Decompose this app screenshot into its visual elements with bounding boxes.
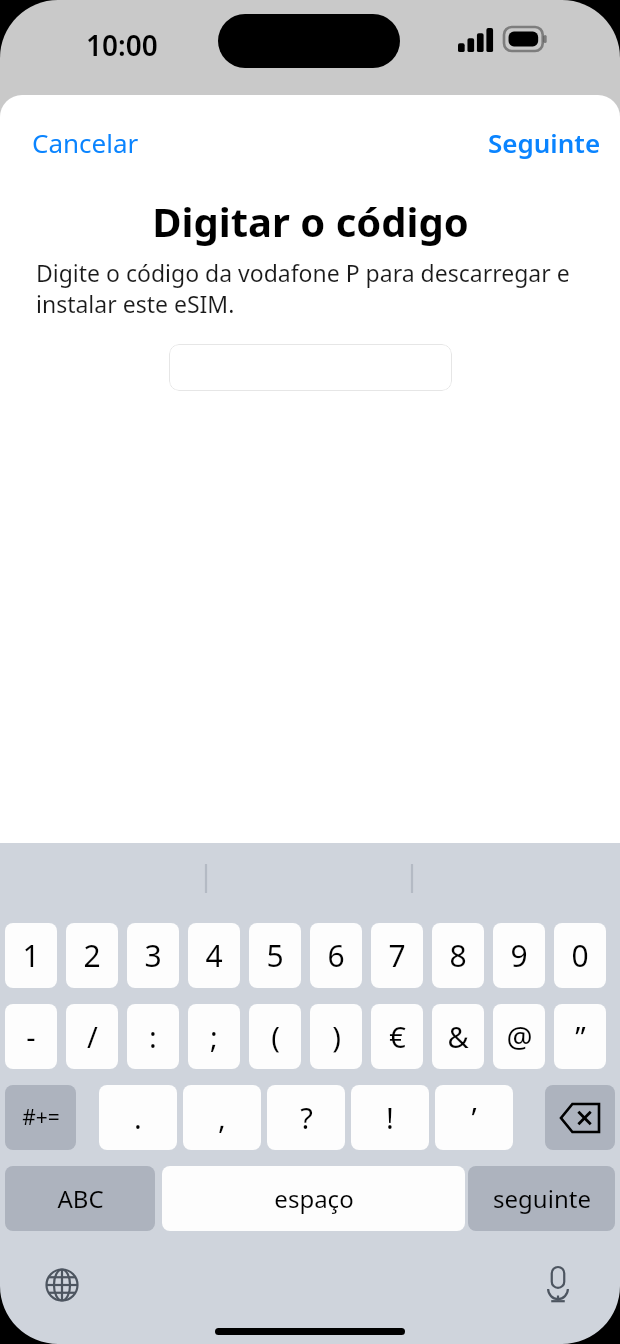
staticText: 5 (266, 935, 284, 976)
button[interactable]: ? (267, 1085, 345, 1150)
button[interactable]: 4 (188, 923, 240, 988)
staticText: seguinte (493, 1182, 591, 1215)
button[interactable]: : (127, 1004, 179, 1069)
staticText: 3 (144, 935, 162, 976)
button[interactable]: ; (188, 1004, 240, 1069)
staticText: ! (386, 1098, 394, 1137)
button[interactable]: 5 (249, 923, 301, 988)
button[interactable]: Dictation (528, 1255, 588, 1315)
staticText: 6 (327, 935, 345, 976)
button[interactable]: , (183, 1085, 261, 1150)
button[interactable]: espaço (162, 1166, 465, 1231)
staticText: 2 (83, 935, 101, 976)
button[interactable]: 8 (432, 923, 484, 988)
staticText: #+= (22, 1103, 60, 1132)
staticText: ? (300, 1098, 313, 1137)
staticText: @ (506, 1017, 533, 1056)
staticText: 8 (449, 935, 467, 976)
staticText: & (447, 1017, 469, 1056)
button[interactable]: & (432, 1004, 484, 1069)
button[interactable]: ) (310, 1004, 362, 1069)
staticText: : (149, 1017, 157, 1056)
staticText: 10:00 (86, 26, 158, 62)
button[interactable]: ABC (5, 1166, 155, 1231)
button[interactable]: ! (351, 1085, 429, 1150)
button[interactable]: 6 (310, 923, 362, 988)
button[interactable]: #+= (5, 1085, 76, 1150)
staticText: , (218, 1098, 226, 1137)
staticText: - (26, 1017, 36, 1056)
button[interactable]: seguinte (468, 1166, 615, 1231)
button[interactable]: ” (554, 1004, 606, 1069)
button[interactable]: 3 (127, 923, 179, 988)
button[interactable]: ’ (435, 1085, 513, 1150)
staticText: ABC (57, 1182, 104, 1215)
button[interactable]: / (66, 1004, 118, 1069)
button[interactable]: Cancelar (32, 125, 139, 160)
button[interactable]: ( (249, 1004, 301, 1069)
button[interactable]: . (99, 1085, 177, 1150)
staticText: Digitar o código (152, 194, 469, 248)
staticText: / (87, 1017, 98, 1056)
staticText: € (389, 1017, 406, 1056)
button[interactable] (169, 344, 452, 391)
staticText: 4 (205, 935, 223, 976)
button[interactable]: @ (493, 1004, 545, 1069)
staticText: ) (332, 1017, 341, 1056)
button[interactable]: 7 (371, 923, 423, 988)
staticText: Digite o código da vodafone P para desca… (36, 257, 584, 320)
staticText: 1 (22, 935, 40, 976)
staticText: 0 (571, 935, 589, 976)
staticText: ’ (471, 1098, 477, 1137)
staticText: . (134, 1098, 142, 1137)
staticText: ( (271, 1017, 280, 1056)
button[interactable]: Backspace (545, 1085, 615, 1150)
button[interactable]: 9 (493, 923, 545, 988)
button[interactable]: - (5, 1004, 57, 1069)
button[interactable]: Change keyboard (32, 1255, 92, 1315)
button[interactable]: Seguinte (488, 125, 601, 160)
staticText: 7 (388, 935, 406, 976)
button[interactable]: 0 (554, 923, 606, 988)
staticText: Cancelar (32, 125, 139, 160)
button[interactable]: 1 (5, 923, 57, 988)
button[interactable]: 2 (66, 923, 118, 988)
button[interactable]: € (371, 1004, 423, 1069)
staticText: 9 (510, 935, 528, 976)
staticText: espaço (274, 1182, 354, 1215)
staticText: Seguinte (488, 125, 601, 160)
staticText: ; (210, 1017, 218, 1056)
staticText: ” (575, 1017, 586, 1056)
